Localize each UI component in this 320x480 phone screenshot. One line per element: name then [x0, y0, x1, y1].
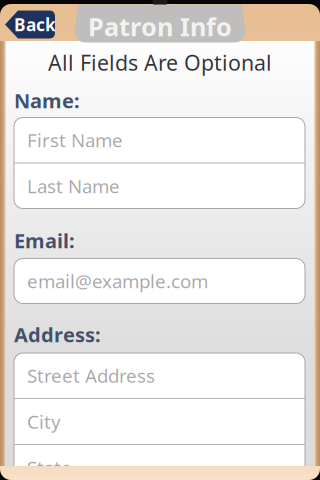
button[interactable]: State — [14, 445, 305, 480]
button[interactable]: Last Name — [14, 163, 305, 208]
staticText: Patron Info — [88, 10, 232, 43]
staticText: Street Address — [27, 363, 155, 388]
button[interactable]: email@example.com — [14, 258, 305, 303]
staticText: City — [27, 409, 61, 434]
button[interactable]: City — [14, 399, 305, 444]
button[interactable]: Back — [5, 10, 55, 38]
staticText: Email: — [14, 227, 75, 254]
staticText: Name: — [14, 87, 80, 114]
staticText: Last Name — [27, 174, 120, 198]
staticText: email@example.com — [27, 269, 208, 293]
staticText: First Name — [27, 128, 123, 152]
staticText: State — [27, 455, 72, 480]
button[interactable]: Street Address — [14, 353, 305, 398]
staticText: All Fields Are Optional — [48, 48, 272, 77]
staticText: Address: — [14, 321, 101, 348]
button[interactable]: First Name — [14, 117, 305, 162]
staticText: Back — [14, 13, 56, 36]
